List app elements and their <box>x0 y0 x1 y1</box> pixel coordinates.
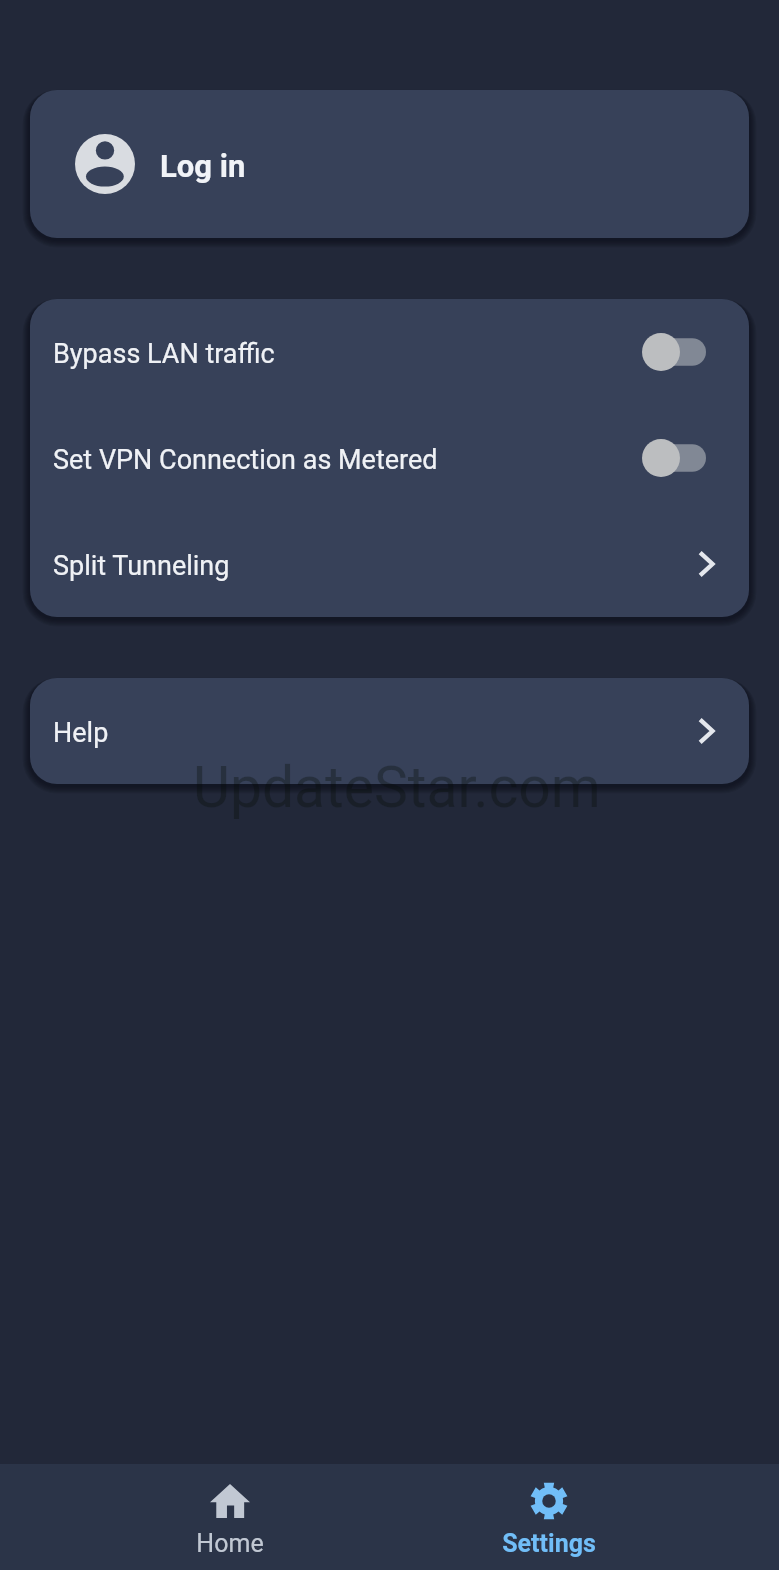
button[interactable]: Settings <box>389 1464 709 1570</box>
button[interactable]: Help <box>30 678 749 784</box>
staticText: Set VPN Connection as Metered <box>53 444 438 476</box>
button[interactable]: Bypass LAN traffic <box>30 299 749 405</box>
staticText: Settings <box>502 1529 596 1558</box>
button[interactable]: Split Tunneling <box>30 511 749 617</box>
staticText: Home <box>196 1529 264 1558</box>
staticText: UpdateStar.com <box>193 754 601 821</box>
staticText: Log in <box>160 148 246 184</box>
staticText: Help <box>53 717 109 749</box>
staticText: Split Tunneling <box>53 550 230 582</box>
button[interactable]: Set VPN Connection as Metered <box>30 405 749 511</box>
button[interactable]: Home <box>70 1464 389 1570</box>
staticText: Bypass LAN traffic <box>53 338 275 370</box>
